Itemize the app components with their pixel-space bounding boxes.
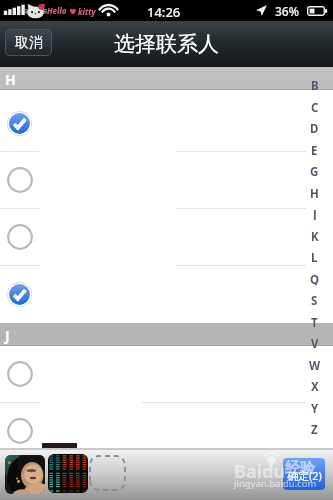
staticText: H (5, 70, 16, 89)
staticText: V (311, 336, 319, 349)
staticText: H (310, 186, 319, 199)
staticText: L (311, 250, 318, 263)
staticText: X (311, 379, 319, 392)
staticText: 36% (275, 3, 299, 19)
staticText: G (310, 164, 319, 177)
button[interactable]: Recent app photo (5, 455, 45, 494)
button[interactable]: Contact selected (0, 266, 333, 323)
staticText: 选择联系人 (0, 31, 333, 57)
staticText: jingyan.baidu.com (234, 477, 317, 490)
staticText: 确定(2) (287, 468, 322, 483)
staticText: Hello (47, 5, 67, 16)
staticText: C (311, 100, 319, 113)
button[interactable]: Contact (0, 209, 333, 266)
staticText: kitty (78, 6, 96, 17)
staticText: Baidu (234, 459, 286, 484)
button[interactable]: Contact (0, 346, 333, 403)
staticText: J (5, 326, 10, 345)
staticText: D (310, 121, 319, 134)
staticText: Q (310, 272, 320, 285)
staticText: T (311, 315, 318, 328)
staticText: K (311, 229, 319, 242)
button[interactable]: Contact (0, 152, 333, 209)
staticText: W (309, 358, 321, 371)
staticText: J (313, 207, 317, 220)
staticText: 经验 (285, 459, 315, 478)
staticText: S (311, 293, 318, 306)
staticText: 14:26 (147, 3, 181, 21)
button[interactable]: Contact (0, 403, 333, 460)
button[interactable]: Contact selected (0, 95, 333, 152)
staticText: E (311, 143, 318, 156)
staticText: Y (311, 401, 319, 414)
staticText: 取消 (15, 34, 43, 52)
staticText: Z (311, 422, 318, 435)
button[interactable]: 确定(2) (283, 458, 325, 490)
button[interactable]: Recent app music (48, 454, 88, 493)
button[interactable]: 取消 (6, 30, 51, 55)
staticText: B (311, 78, 319, 91)
